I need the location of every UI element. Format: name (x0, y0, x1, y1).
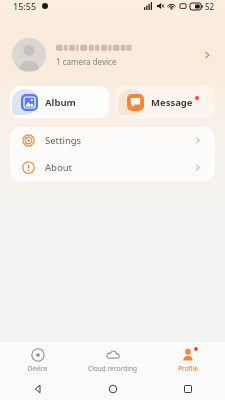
other: Account details (201, 49, 213, 61)
button[interactable]: Cloud recording (75, 345, 150, 376)
staticText: Cloud recording (88, 364, 137, 373)
button[interactable]: About (10, 154, 215, 181)
button[interactable]: Album (10, 86, 109, 118)
button[interactable]: Profile (150, 345, 225, 376)
staticText: Message (151, 96, 193, 109)
button[interactable]: Message (116, 86, 215, 118)
staticText: 52 (205, 1, 215, 12)
button[interactable]: Back (33, 384, 43, 394)
staticText: Device (27, 364, 48, 373)
button[interactable]: Home (108, 384, 118, 394)
button[interactable]: Device (0, 345, 75, 376)
staticText: Settings (45, 134, 82, 147)
staticText: Profile (178, 364, 198, 373)
button[interactable]: 1 camera device (0, 34, 225, 76)
staticText: About (45, 161, 72, 174)
staticText: 15:55 (13, 0, 37, 12)
staticText: Album (45, 96, 76, 109)
button[interactable]: Settings (10, 127, 215, 154)
button[interactable]: Recent apps (183, 384, 193, 394)
staticText: 1 camera device (56, 56, 117, 67)
